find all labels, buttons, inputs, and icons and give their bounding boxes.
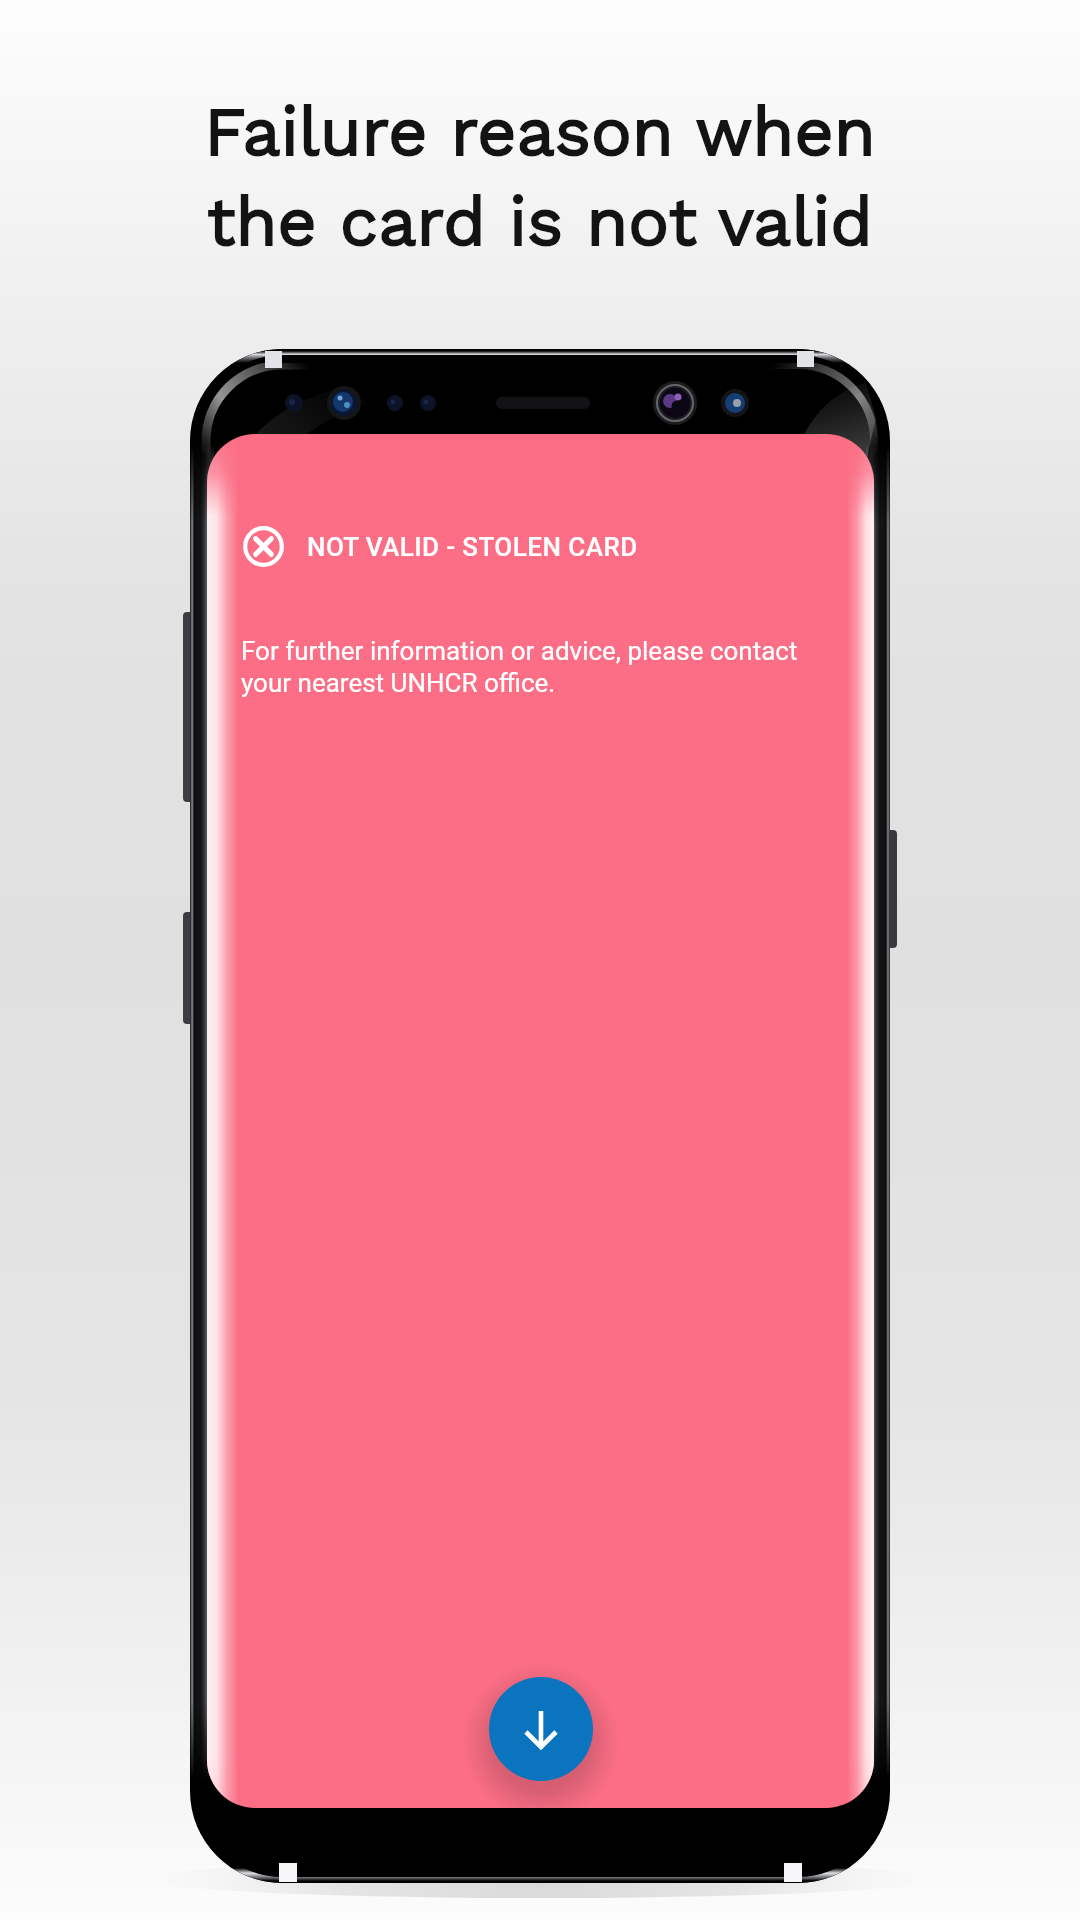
button[interactable]: Download card (489, 1677, 593, 1781)
staticText: For further information or advice, pleas… (241, 636, 811, 699)
staticText: NOT VALID - STOLEN CARD (307, 532, 638, 562)
staticText: Failure reason when the card is not vali… (204, 92, 876, 261)
